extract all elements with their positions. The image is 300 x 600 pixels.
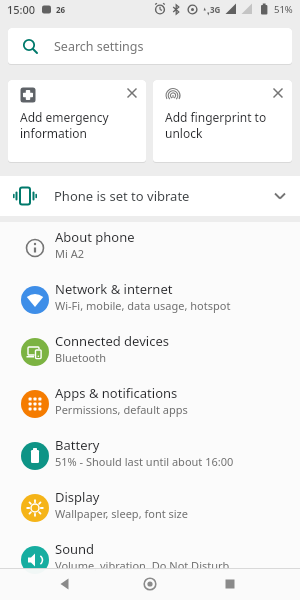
staticText: Phone is set to vibrate bbox=[54, 187, 190, 205]
button[interactable] bbox=[55, 574, 75, 594]
button[interactable]: About phone bbox=[0, 222, 300, 274]
button[interactable]: Search settings bbox=[8, 28, 292, 64]
staticText: Network & internet bbox=[55, 280, 173, 298]
staticText: 26 bbox=[56, 4, 66, 15]
staticText: Apps & notifications bbox=[55, 384, 178, 402]
staticText: Bluetooth bbox=[55, 350, 107, 365]
button[interactable]: Add fingerprint to unlock bbox=[153, 80, 292, 162]
staticText: Wi-Fi, mobile, data usage, hotspot bbox=[55, 298, 231, 313]
button[interactable]: Add emergency information bbox=[8, 80, 146, 162]
button[interactable]: Apps & notifications bbox=[0, 378, 300, 430]
staticText: 51% - Should last until about 16:00 bbox=[55, 454, 234, 469]
staticText: Search settings bbox=[54, 38, 144, 55]
staticText: Wallpaper, sleep, font size bbox=[55, 506, 188, 521]
staticText: Connected devices bbox=[55, 332, 169, 350]
staticText: Display bbox=[55, 488, 100, 506]
button[interactable] bbox=[220, 574, 240, 594]
staticText: About phone bbox=[55, 228, 135, 246]
staticText: Mi A2 bbox=[55, 246, 84, 261]
button[interactable]: Battery bbox=[0, 430, 300, 482]
staticText: 51% bbox=[274, 3, 293, 16]
staticText: Battery bbox=[55, 436, 100, 454]
staticText: Sound bbox=[55, 540, 95, 558]
staticText: Add emergency information bbox=[20, 109, 109, 141]
staticText: Add fingerprint to unlock bbox=[165, 109, 267, 141]
staticText: 3G bbox=[210, 4, 221, 15]
button[interactable] bbox=[140, 574, 160, 594]
staticText: Permissions, default apps bbox=[55, 402, 188, 417]
staticText: 15:00 bbox=[7, 2, 36, 17]
button[interactable]: Network & internet bbox=[0, 274, 300, 326]
button[interactable]: Phone is set to vibrate bbox=[0, 176, 300, 216]
button[interactable]: Display bbox=[0, 482, 300, 534]
button[interactable]: Connected devices bbox=[0, 326, 300, 378]
staticText: Volume, vibration, Do Not Disturb bbox=[55, 558, 230, 573]
button[interactable]: Sound bbox=[0, 534, 300, 586]
